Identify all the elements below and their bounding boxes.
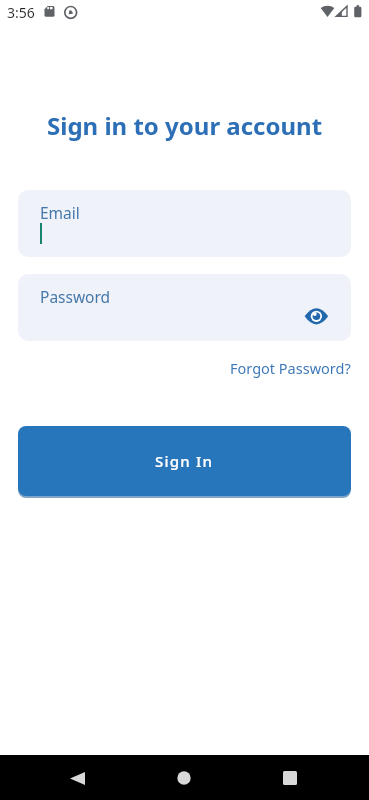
staticText: 3:56	[7, 3, 35, 22]
button[interactable]	[276, 764, 304, 792]
button[interactable]: Email	[18, 190, 351, 257]
staticText: Email	[40, 202, 80, 223]
button[interactable]	[63, 764, 91, 792]
button[interactable]: Sign In	[18, 426, 351, 496]
button[interactable]: Password	[18, 274, 351, 341]
staticText: Forgot Password?	[230, 358, 351, 378]
button[interactable]	[302, 303, 330, 329]
button[interactable]: Forgot Password?	[230, 358, 351, 378]
staticText: Password	[40, 286, 111, 307]
staticText: Sign in to your account	[47, 109, 323, 142]
button[interactable]	[170, 764, 198, 792]
staticText: Sign In	[155, 451, 214, 471]
